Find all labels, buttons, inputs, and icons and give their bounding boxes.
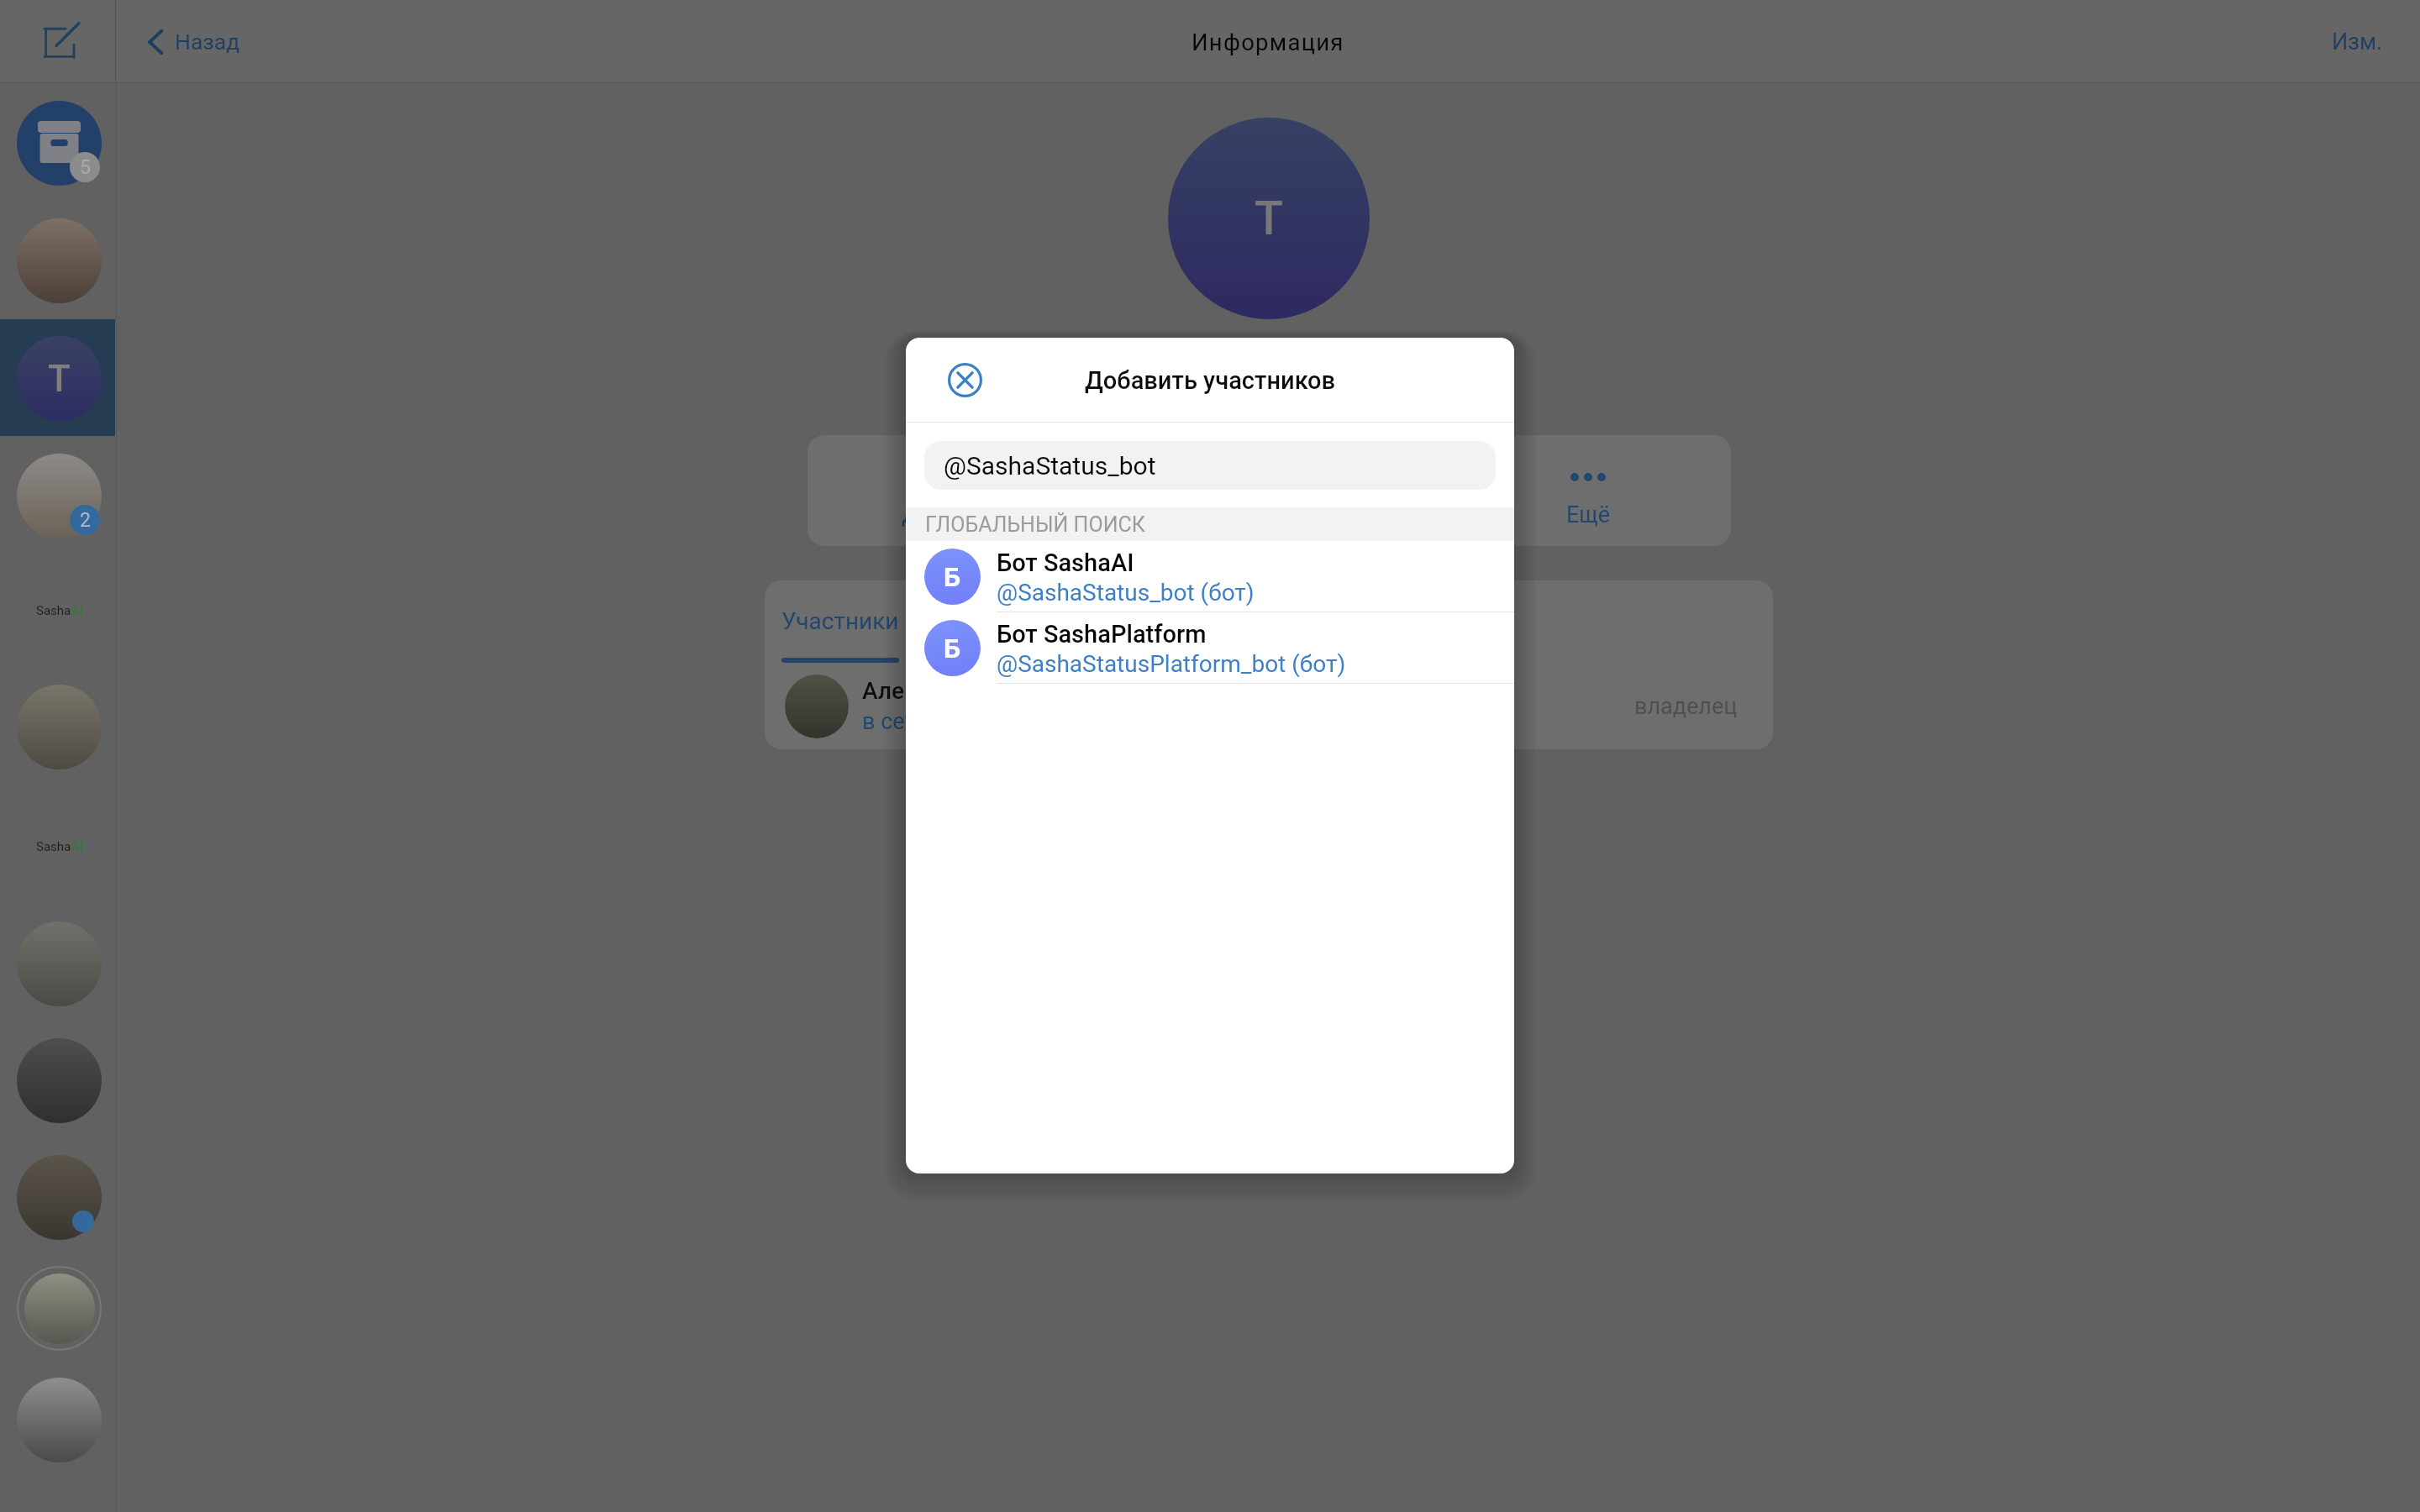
button[interactable]: Б xyxy=(906,541,1514,612)
button[interactable]: Chat xyxy=(17,1038,102,1123)
button[interactable]: Ещё xyxy=(1504,435,1672,546)
staticText: 5 xyxy=(80,156,91,179)
staticText: Звук xyxy=(1352,501,1402,528)
button[interactable]: Close xyxy=(948,363,982,397)
button[interactable]: Chat xyxy=(17,685,102,769)
staticText: Добавить участников xyxy=(1085,366,1336,395)
staticText: T xyxy=(1255,191,1284,246)
button[interactable]: @SashaStatus_bot xyxy=(924,441,1496,490)
staticText: @SashaStatus_bot (бот) xyxy=(997,579,1255,606)
button[interactable]: Chat xyxy=(17,1378,102,1462)
button[interactable]: Group photo xyxy=(1168,118,1370,319)
button[interactable]: Поиск xyxy=(1081,435,1249,546)
staticText: AI xyxy=(71,603,83,618)
button[interactable]: Участники xyxy=(781,580,899,662)
staticText: Информация xyxy=(1192,29,1344,55)
button[interactable]: Б xyxy=(906,612,1514,684)
button[interactable]: Chat xyxy=(17,1155,102,1240)
button[interactable]: Chat xyxy=(17,454,102,538)
staticText: Алексей xyxy=(862,677,956,705)
button[interactable]: Chat xyxy=(17,1266,102,1351)
button[interactable]: Изм. xyxy=(2332,0,2383,83)
button[interactable]: Chat xyxy=(17,101,102,186)
staticText: Поиск xyxy=(1133,501,1199,528)
staticText: Бот SashaPlatform xyxy=(997,620,1207,648)
button[interactable]: Chat xyxy=(17,921,102,1006)
button[interactable]: New message xyxy=(24,22,79,62)
staticText: 2 xyxy=(80,509,91,532)
staticText: @SashaStatusPlatform_bot (бот) xyxy=(997,650,1346,678)
staticText: Участники xyxy=(781,607,899,635)
staticText: Sasha xyxy=(36,603,71,618)
staticText: ГЛОБАЛЬНЫЙ ПОИСК xyxy=(925,512,1145,537)
button[interactable]: Звук xyxy=(1292,435,1460,546)
staticText: AI xyxy=(71,839,83,854)
button[interactable]: Chat xyxy=(17,336,102,421)
staticText: Изм. xyxy=(2332,29,2383,55)
staticText: Б xyxy=(944,633,961,664)
staticText: Ещё xyxy=(1566,501,1611,528)
staticText: в сети xyxy=(862,708,929,735)
staticText: T xyxy=(48,357,71,401)
staticText: владелец xyxy=(1634,693,1738,720)
staticText: Sasha xyxy=(36,839,71,854)
button[interactable]: Назад xyxy=(145,0,240,83)
staticText: Б xyxy=(944,561,961,593)
button[interactable]: Добавить xyxy=(870,435,1038,546)
button[interactable]: Алексей xyxy=(785,663,1738,749)
button[interactable]: Chat xyxy=(17,218,102,303)
staticText: Бот SashaAI xyxy=(997,549,1134,577)
staticText: Добавить xyxy=(902,501,1006,528)
staticText: Назад xyxy=(175,29,240,55)
staticText: @SashaStatus_bot xyxy=(944,451,1156,480)
